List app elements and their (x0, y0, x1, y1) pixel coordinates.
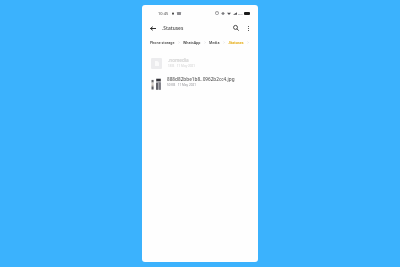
staticText: Media (209, 40, 220, 45)
staticText: Phone storage (150, 40, 175, 45)
staticText: .Statuses (228, 40, 244, 45)
button[interactable]: Phone storage (150, 40, 175, 45)
button[interactable]: Navigate up (147, 22, 159, 34)
staticText: 18 B 11 May 2021 (168, 64, 196, 68)
staticText: 10:45 (158, 11, 169, 16)
button[interactable]: .nomedia (142, 53, 258, 72)
staticText: 88% (238, 12, 243, 15)
button[interactable]: .Statuses (228, 40, 244, 45)
button[interactable]: Media (209, 40, 220, 45)
staticText: .Statuses (162, 25, 184, 32)
staticText: 888d82bbe1b8..0962b2cc4.jpg (167, 76, 235, 82)
staticText: .nomedia (168, 57, 189, 63)
button[interactable]: More options (242, 22, 254, 34)
button[interactable]: Search (230, 22, 242, 34)
staticText: 50 KB 11 May 2021 (167, 83, 197, 87)
button[interactable]: WhatsApp (183, 40, 201, 45)
staticText: WhatsApp (183, 40, 201, 45)
button[interactable]: 888d82bbe1b8..0962b2cc4.jpg (142, 72, 258, 91)
